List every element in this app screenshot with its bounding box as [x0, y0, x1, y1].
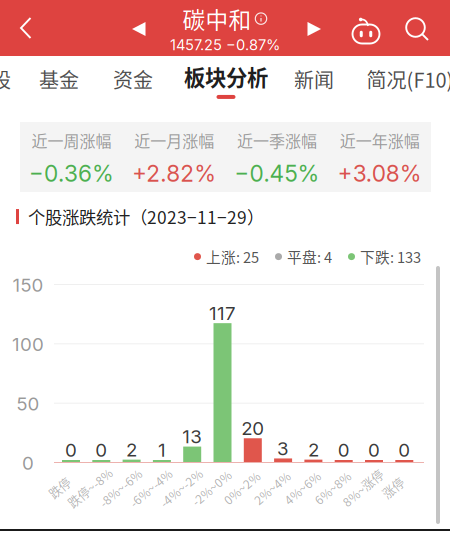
staticText: 2	[308, 438, 319, 461]
staticText: 6%~8%	[311, 479, 354, 497]
staticText: 上涨: 25	[206, 246, 259, 267]
staticText: 4%~6%	[281, 479, 324, 497]
staticText: 0	[22, 452, 34, 474]
staticText: +3.08%	[338, 160, 422, 187]
staticText: 20	[241, 417, 264, 440]
staticText: 个股涨跌统计（2023−11−29）	[28, 204, 264, 229]
staticText: 0	[65, 439, 77, 461]
staticText: 资金	[113, 64, 153, 93]
button[interactable]: Previous sector	[121, 8, 157, 50]
staticText: -4%~-2%	[156, 479, 207, 497]
staticText: 新闻	[294, 64, 334, 93]
staticText: 1457.25 −0.87%	[170, 36, 280, 54]
staticText: 板块分析	[184, 61, 268, 92]
staticText: -8%~-6%	[95, 479, 146, 497]
button[interactable]: 基金	[39, 57, 79, 101]
staticText: 3	[277, 437, 289, 460]
staticText: 13	[182, 425, 202, 448]
staticText: 平盘: 4	[287, 246, 332, 267]
staticText: 2%~4%	[251, 479, 294, 497]
staticText: 下跌: 133	[360, 246, 421, 267]
staticText: 150	[12, 274, 43, 296]
staticText: 近一年涨幅	[340, 129, 420, 152]
button[interactable]: 资金	[113, 57, 153, 101]
staticText: −0.36%	[29, 160, 114, 187]
staticText: 8%~涨停	[338, 479, 387, 497]
staticText: -6%~-4%	[125, 479, 176, 497]
button[interactable]: Next sector	[296, 8, 332, 50]
staticText: +2.82%	[132, 160, 216, 187]
staticText: 近一月涨幅	[134, 129, 214, 152]
staticText: −0.45%	[234, 160, 319, 187]
staticText: 跌停~-8%	[64, 479, 117, 497]
staticText: 117	[209, 302, 236, 324]
button[interactable]: 个股	[0, 57, 11, 101]
staticText: -2%~0%	[188, 479, 235, 497]
staticText: 基金	[39, 64, 79, 93]
staticText: 碳中和	[182, 2, 251, 35]
staticText: 2	[126, 438, 137, 461]
staticText: 1	[158, 439, 166, 461]
staticText: 50	[16, 392, 39, 415]
staticText: 0%~2%	[220, 479, 263, 497]
staticText: 个股	[0, 64, 11, 93]
staticText: 近一季涨幅	[237, 129, 317, 152]
staticText: 0	[368, 439, 380, 461]
staticText: 近一周涨幅	[31, 129, 111, 152]
staticText: 0	[338, 439, 350, 461]
button[interactable]: 板块分析	[184, 57, 268, 103]
button[interactable]: Search	[396, 5, 438, 53]
staticText: 0	[398, 439, 410, 461]
staticText: 简况(F10)	[366, 64, 450, 93]
button[interactable]: 简况(F10)	[366, 57, 450, 101]
staticText: 0	[95, 439, 107, 461]
staticText: 跌停	[48, 479, 72, 497]
button[interactable]: Back	[3, 3, 49, 53]
staticText: 涨停	[381, 479, 405, 497]
button[interactable]: 新闻	[294, 57, 334, 101]
staticText: 100	[12, 333, 44, 356]
button[interactable]: AI assistant	[345, 6, 387, 54]
